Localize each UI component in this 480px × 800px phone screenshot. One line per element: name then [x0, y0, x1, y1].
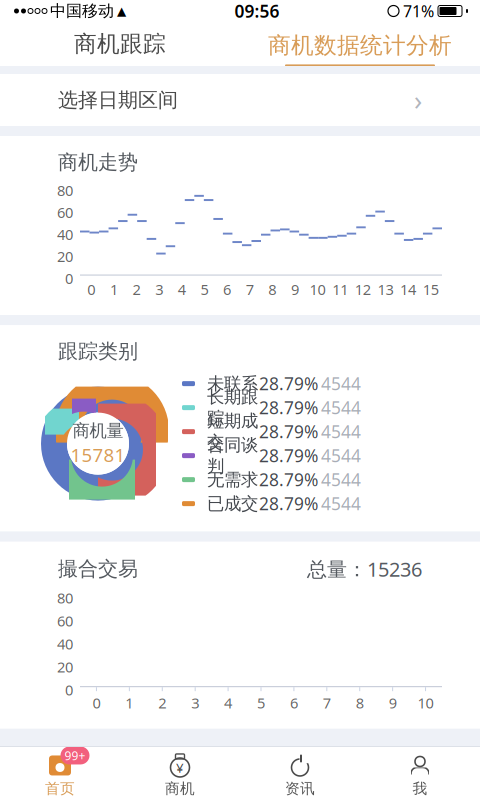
staticText: 0 — [92, 693, 100, 713]
staticText: 未联系 — [207, 373, 258, 394]
staticText: 0 — [87, 280, 95, 299]
button[interactable]: 资讯 — [240, 748, 360, 797]
staticText: 4544 — [321, 420, 361, 443]
staticText: 28.79% — [259, 444, 318, 467]
staticText: 4544 — [321, 396, 361, 419]
staticText: 短期成交 — [207, 410, 258, 453]
staticText: 20 — [57, 657, 73, 677]
staticText: 60 — [57, 611, 73, 631]
staticText: 8 — [268, 280, 276, 299]
staticText: 5 — [200, 280, 208, 299]
staticText: 6 — [223, 280, 231, 299]
staticText: 15 — [423, 280, 439, 299]
staticText: 3 — [191, 693, 199, 713]
staticText: ¥ — [176, 759, 184, 776]
staticText: 4544 — [321, 444, 361, 467]
staticText: 首页 — [45, 779, 75, 797]
staticText: 中国移动 — [50, 1, 114, 21]
staticText: 4544 — [321, 492, 361, 515]
button[interactable]: 我 — [360, 748, 480, 797]
staticText: 8 — [356, 693, 364, 713]
staticText: 商机数据统计分析 — [268, 32, 452, 59]
staticText: 28.79% — [259, 372, 318, 395]
staticText: 80 — [57, 181, 73, 200]
staticText: 商机 — [165, 779, 195, 797]
staticText: 选择日期区间 — [58, 88, 178, 112]
staticText: 2 — [133, 280, 141, 299]
staticText: 28.79% — [259, 396, 318, 419]
staticText: 9 — [291, 280, 299, 299]
staticText: 撮合交易 — [58, 557, 138, 581]
staticText: 商机量 — [72, 420, 123, 441]
staticText: 40 — [57, 225, 73, 244]
staticText: › — [414, 82, 422, 118]
staticText: 0 — [65, 269, 73, 288]
staticText: 3 — [155, 280, 163, 299]
staticText: 商机跟踪 — [74, 30, 166, 58]
staticText: 资讯 — [285, 779, 315, 797]
button[interactable]: 99+ — [0, 748, 120, 797]
staticText: 无需求 — [207, 469, 258, 490]
staticText: 99+ — [64, 747, 85, 763]
staticText: 28.79% — [259, 420, 318, 443]
button[interactable]: ¥ — [120, 748, 240, 797]
staticText: 09:56 — [234, 0, 279, 22]
staticText: 跟踪类别 — [58, 339, 138, 364]
staticText: 总量：15236 — [307, 556, 422, 582]
staticText: 4544 — [321, 372, 361, 395]
staticText: 15781 — [70, 442, 125, 467]
staticText: 40 — [57, 634, 73, 654]
button[interactable]: 商机数据统计分析 — [240, 22, 480, 66]
staticText: 4 — [224, 693, 232, 713]
staticText: 60 — [57, 203, 73, 222]
staticText: 7 — [323, 693, 331, 713]
staticText: 9 — [389, 693, 397, 713]
button[interactable]: 选择日期区间 — [0, 74, 480, 126]
staticText: 80 — [57, 588, 73, 608]
staticText: 我 — [412, 779, 427, 797]
staticText: 商机走势 — [58, 150, 138, 175]
staticText: 2 — [158, 693, 166, 713]
staticText: 10 — [417, 693, 433, 713]
staticText: 1 — [125, 693, 133, 713]
staticText: 7 — [246, 280, 254, 299]
staticText: 20 — [57, 247, 73, 266]
staticText: 14 — [400, 280, 416, 299]
staticText: 4544 — [321, 468, 361, 491]
staticText: 11 — [332, 280, 348, 299]
staticText: 0 — [65, 680, 73, 700]
staticText: 合同谈判 — [207, 434, 258, 477]
staticText: 已成交 — [207, 493, 258, 514]
staticText: 10 — [310, 280, 326, 299]
staticText: 71% — [403, 0, 434, 22]
staticText: 4 — [178, 280, 186, 299]
staticText: 28.79% — [259, 492, 318, 515]
staticText: 1 — [110, 280, 118, 299]
staticText: 长期跟踪 — [207, 386, 258, 429]
staticText: 13 — [377, 280, 393, 299]
staticText: 28.79% — [259, 468, 318, 491]
staticText: 5 — [257, 693, 265, 713]
staticText: 12 — [355, 280, 371, 299]
staticText: ▲ — [117, 4, 126, 18]
staticText: 6 — [290, 693, 298, 713]
button[interactable]: 商机跟踪 — [0, 18, 240, 70]
